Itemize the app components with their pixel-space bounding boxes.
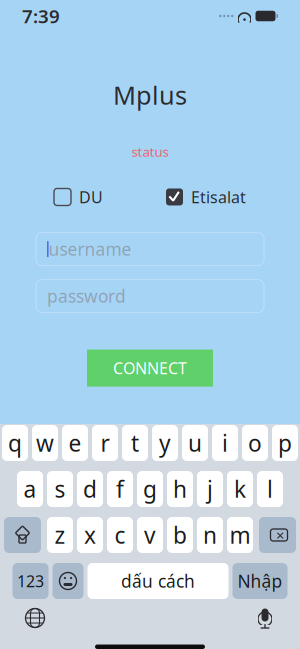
button[interactable]: 123 <box>12 563 48 599</box>
button[interactable]: Change keyboard language <box>18 603 52 633</box>
button[interactable]: t <box>122 425 148 461</box>
staticText: d <box>83 474 97 504</box>
staticText: status <box>131 143 168 160</box>
staticText: a <box>23 474 36 504</box>
staticText: CONNECT <box>113 357 187 379</box>
button[interactable]: e <box>62 425 88 461</box>
staticText: 7:39 <box>22 4 60 28</box>
button[interactable]: k <box>227 471 253 507</box>
button[interactable]: r <box>92 425 118 461</box>
staticText: m <box>229 520 250 550</box>
button[interactable]: w <box>32 425 58 461</box>
staticText: v <box>144 520 156 550</box>
staticText: Etisalat <box>191 186 246 207</box>
staticText: f <box>116 474 124 504</box>
button[interactable]: z <box>47 517 73 553</box>
button[interactable]: Shift <box>4 517 41 553</box>
button[interactable]: h <box>167 471 193 507</box>
button[interactable]: g <box>137 471 163 507</box>
staticText: z <box>54 520 65 550</box>
button[interactable]: j <box>197 471 223 507</box>
staticText: i <box>222 428 228 458</box>
button[interactable]: f <box>107 471 133 507</box>
staticText: g <box>143 474 157 504</box>
button[interactable]: dấu cách <box>87 563 228 599</box>
button[interactable]: u <box>182 425 208 461</box>
staticText: c <box>114 520 125 550</box>
staticText: q <box>8 428 22 458</box>
button[interactable]: i <box>212 425 238 461</box>
button[interactable]: n <box>197 517 223 553</box>
button[interactable]: Nhập <box>232 563 287 599</box>
staticText: s <box>54 474 65 504</box>
staticText: Mplus <box>113 78 187 112</box>
button[interactable]: y <box>152 425 178 461</box>
staticText: w <box>36 428 54 458</box>
staticText: Nhập <box>237 569 282 592</box>
button[interactable]: s <box>47 471 73 507</box>
staticText: password <box>47 285 126 308</box>
button[interactable]: a <box>17 471 43 507</box>
staticText: b <box>173 520 187 550</box>
button[interactable]: v <box>137 517 163 553</box>
staticText: u <box>188 428 202 458</box>
staticText: DU <box>79 186 103 207</box>
staticText: h <box>173 474 187 504</box>
staticText: dấu cách <box>121 569 195 592</box>
staticText: t <box>131 428 139 458</box>
button[interactable]: Emoji <box>52 563 83 599</box>
staticText: r <box>100 428 109 458</box>
staticText: o <box>248 428 262 458</box>
staticText: k <box>234 474 246 504</box>
button[interactable]: x <box>77 517 103 553</box>
button[interactable]: p <box>272 425 298 461</box>
button[interactable]: d <box>77 471 103 507</box>
staticText: × <box>276 525 284 545</box>
button[interactable]: CONNECT <box>87 350 213 387</box>
button[interactable]: Delete <box>259 517 296 553</box>
button[interactable]: Dictate <box>248 603 282 633</box>
button[interactable]: c <box>107 517 133 553</box>
staticText: username <box>49 238 132 261</box>
button[interactable]: m <box>227 517 253 553</box>
staticText: p <box>278 428 292 458</box>
staticText: e <box>68 428 81 458</box>
button[interactable]: b <box>167 517 193 553</box>
staticText: n <box>203 520 217 550</box>
staticText: y <box>159 428 171 458</box>
button[interactable]: q <box>2 425 28 461</box>
staticText: x <box>84 520 96 550</box>
button[interactable]: l <box>257 471 283 507</box>
staticText: l <box>267 474 273 504</box>
button[interactable]: Etisalat <box>166 186 246 207</box>
staticText: 123 <box>17 570 44 592</box>
staticText: j <box>207 474 213 504</box>
button[interactable]: DU <box>54 186 103 207</box>
button[interactable]: o <box>242 425 268 461</box>
